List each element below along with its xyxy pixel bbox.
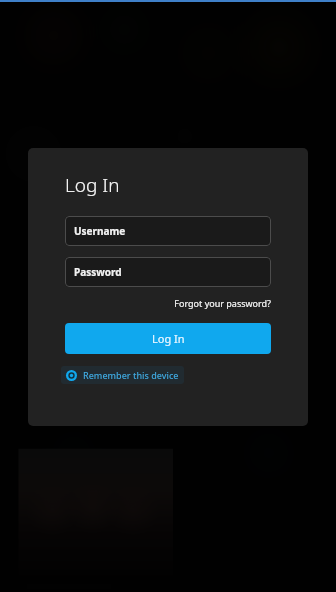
button[interactable]: Password [65,257,271,287]
staticText: Username [74,224,126,238]
button[interactable]: Username [65,216,271,246]
staticText: Password [74,265,122,279]
staticText: Log In [65,172,120,198]
button[interactable]: Log In [65,323,271,354]
button[interactable]: Forgot your password? [65,297,271,309]
staticText: Forgot your password? [65,297,271,309]
staticText: Remember this device [83,369,179,381]
other: Remember this device toggle [66,370,77,381]
button[interactable]: Remember this device toggle [66,369,179,381]
staticText: Log In [152,331,185,346]
